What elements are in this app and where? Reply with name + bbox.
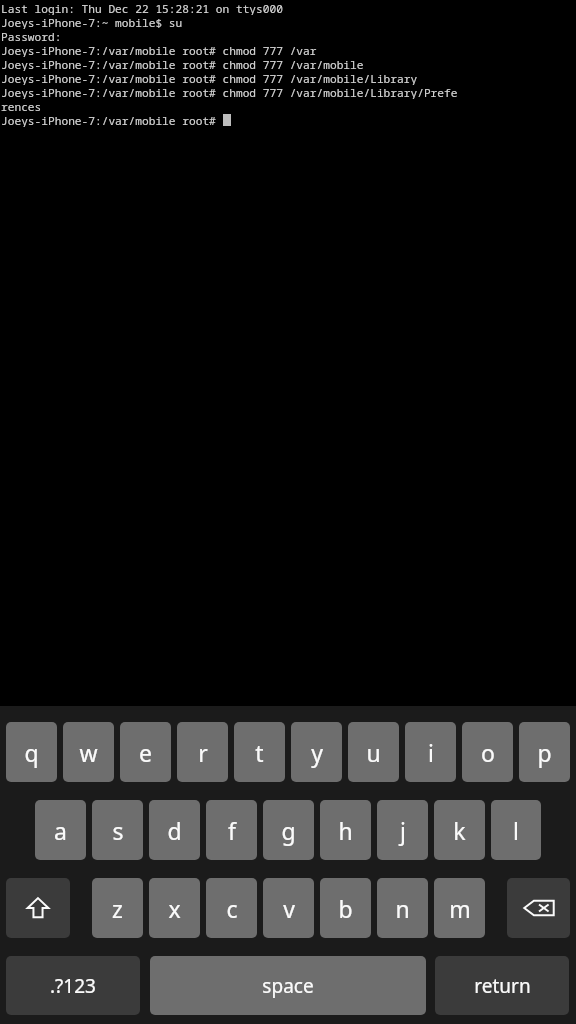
button[interactable]: e [120,722,171,782]
staticText: k [453,815,466,846]
button[interactable]: l [491,800,541,860]
button[interactable]: Backspace [507,878,570,938]
staticText: r [198,737,208,768]
staticText: Joeys-iPhone-7:/var/mobile root# chmod 7… [1,71,418,85]
staticText: rences [1,99,42,113]
button[interactable]: c [206,878,257,938]
staticText: Joeys-iPhone-7:/var/mobile root# chmod 7… [1,85,458,99]
button[interactable]: .?123 [6,956,140,1015]
button[interactable]: u [348,722,399,782]
staticText: f [228,815,236,846]
staticText: n [395,893,410,924]
staticText: .?123 [50,973,96,999]
staticText: h [338,815,353,846]
button[interactable]: f [206,800,257,860]
button[interactable]: h [320,800,371,860]
staticText: a [54,815,67,846]
button[interactable]: n [377,878,428,938]
staticText: v [283,893,295,924]
staticText: u [366,737,381,768]
staticText: space [262,973,314,999]
button[interactable]: i [405,722,456,782]
button[interactable]: q [6,722,57,782]
button[interactable]: x [149,878,200,938]
button[interactable]: v [263,878,314,938]
staticText: o [481,737,495,768]
staticText: b [338,893,353,924]
staticText: q [24,737,39,768]
staticText: s [112,815,124,846]
staticText: x [168,893,181,924]
staticText: z [112,893,123,924]
staticText: y [311,737,323,768]
staticText: Password: [1,29,62,43]
button[interactable]: z [92,878,143,938]
staticText: i [428,737,434,768]
button[interactable]: a [35,800,86,860]
button[interactable]: p [519,722,570,782]
button[interactable]: w [63,722,114,782]
button[interactable]: b [320,878,371,938]
staticText: j [400,815,406,846]
button[interactable]: o [462,722,513,782]
staticText: g [281,815,296,846]
staticText: Joeys-iPhone-7:/var/mobile root# [1,113,223,127]
button[interactable]: r [177,722,228,782]
button[interactable]: space [150,956,426,1015]
staticText: p [537,737,552,768]
button[interactable]: g [263,800,314,860]
button[interactable]: Shift [6,878,70,938]
staticText: t [255,737,264,768]
staticText: c [226,893,238,924]
staticText: Joeys-iPhone-7:/var/mobile root# chmod 7… [1,43,317,57]
staticText: l [513,815,519,846]
button[interactable]: j [377,800,428,860]
button[interactable]: d [149,800,200,860]
staticText: w [79,737,98,768]
button[interactable]: s [92,800,143,860]
button[interactable]: t [234,722,285,782]
staticText: Last login: Thu Dec 22 15:28:21 on ttys0… [1,1,283,15]
staticText: d [167,815,182,846]
button[interactable]: y [291,722,342,782]
staticText: e [139,737,152,768]
button[interactable]: k [434,800,485,860]
button[interactable]: return [435,956,569,1015]
staticText: Joeys-iPhone-7:~ mobile$ su [1,15,183,29]
staticText: m [449,893,471,924]
staticText: return [474,973,531,999]
button[interactable]: m [434,878,485,938]
staticText: Joeys-iPhone-7:/var/mobile root# chmod 7… [1,57,364,71]
